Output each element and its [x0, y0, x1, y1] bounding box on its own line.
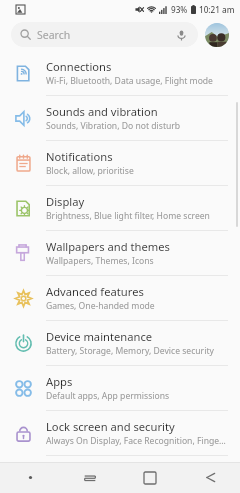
staticText: Battery, Storage, Memory, Device securit…: [46, 345, 214, 357]
staticText: Search: [37, 28, 173, 42]
staticText: Device maintenance: [46, 329, 153, 344]
staticText: Apps: [46, 374, 73, 389]
staticText: Wallpapers and themes: [46, 239, 170, 254]
button[interactable]: Voice search: [173, 27, 189, 43]
staticText: Advanced features: [46, 284, 144, 299]
staticText: Display: [46, 194, 85, 209]
button[interactable]: Hide keyboard: [0, 462, 60, 493]
staticText: Sounds and vibration: [46, 104, 158, 119]
staticText: Wallpapers, Themes, Icons: [46, 255, 154, 267]
staticText: Connections: [46, 59, 112, 74]
button[interactable]: Profile: [205, 23, 229, 47]
button[interactable]: Apps: [0, 366, 240, 411]
button[interactable]: Wallpapers and themes: [0, 231, 240, 276]
button[interactable]: Notifications: [0, 141, 240, 186]
staticText: Sounds, Vibration, Do not disturb: [46, 120, 181, 132]
staticText: Notifications: [46, 149, 113, 164]
staticText: Block, allow, prioritise: [46, 165, 134, 177]
staticText: 10:21 am: [199, 4, 235, 15]
button[interactable]: Advanced features: [0, 276, 240, 321]
button[interactable]: Display: [0, 186, 240, 231]
button[interactable]: Recents: [60, 462, 120, 493]
staticText: Lock screen and security: [46, 419, 175, 434]
button[interactable]: Connections: [0, 51, 240, 96]
button[interactable]: Home: [120, 462, 180, 493]
button[interactable]: Search: [11, 22, 198, 47]
button[interactable]: Device maintenance: [0, 321, 240, 366]
staticText: 93%: [171, 4, 188, 15]
button[interactable]: Back: [180, 462, 240, 493]
staticText: Always On Display, Face Recognition, Fin…: [46, 435, 226, 447]
button[interactable]: Sounds and vibration: [0, 96, 240, 141]
staticText: Games, One-handed mode: [46, 300, 155, 312]
staticText: Brightness, Blue light filter, Home scre…: [46, 210, 210, 222]
staticText: Default apps, App permissions: [46, 390, 170, 402]
button[interactable]: Lock screen and security: [0, 411, 240, 456]
staticText: Wi-Fi, Bluetooth, Data usage, Flight mod…: [46, 75, 213, 87]
